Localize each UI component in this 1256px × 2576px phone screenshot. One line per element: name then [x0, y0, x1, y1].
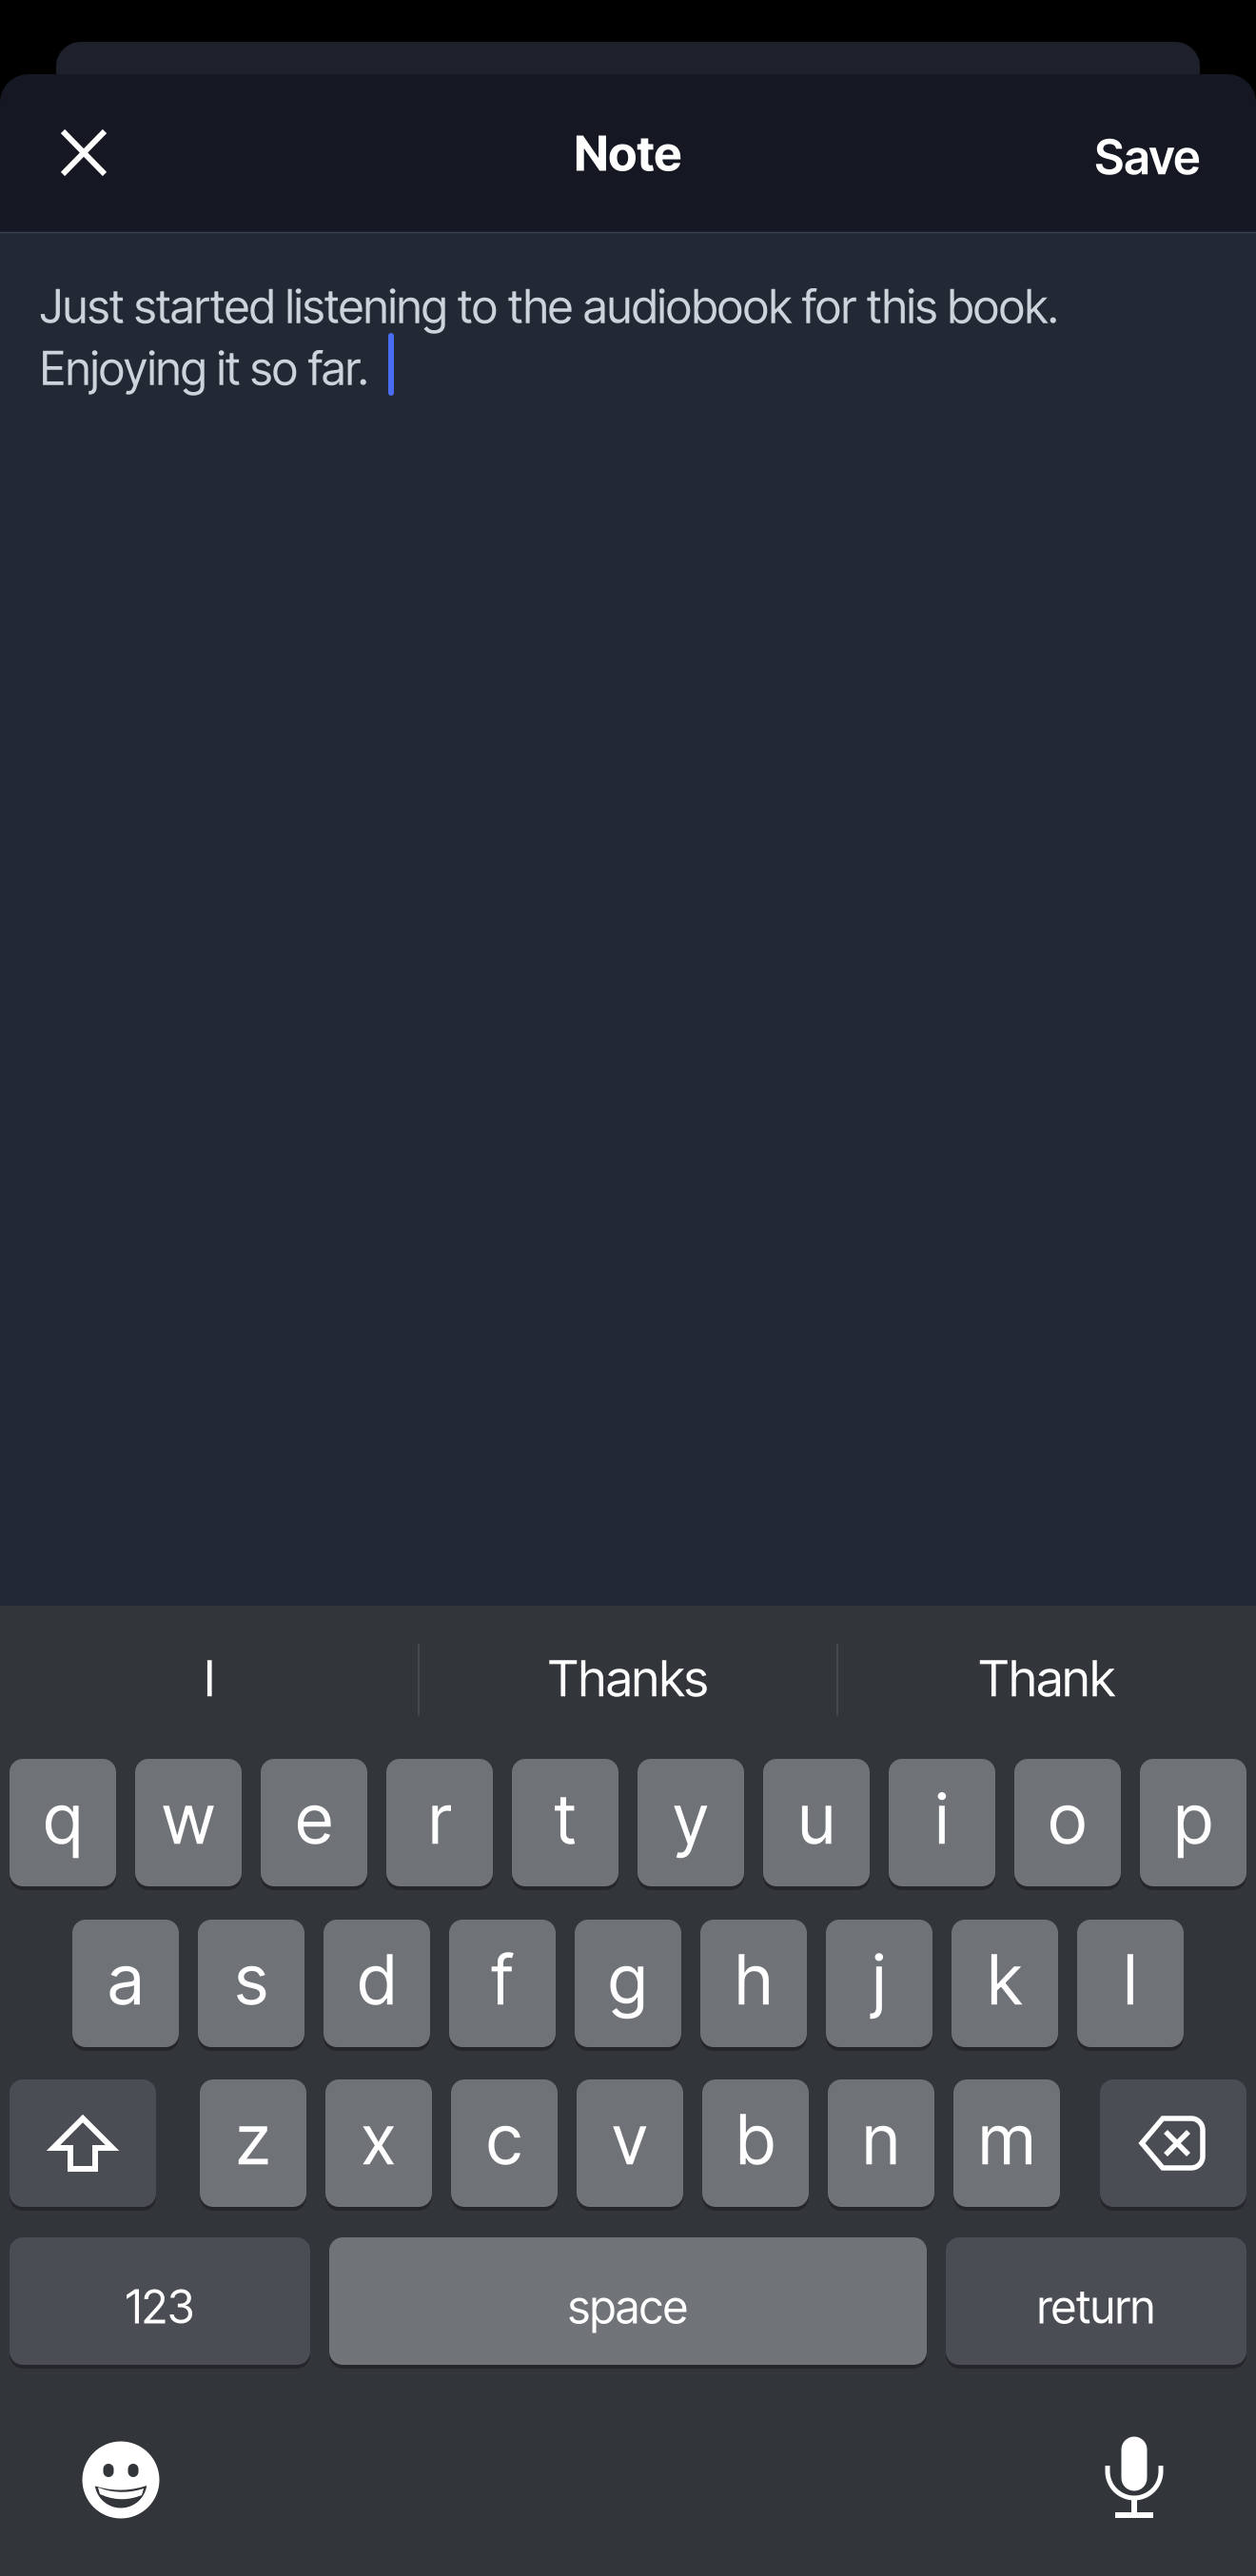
staticText: x	[362, 2098, 396, 2181]
button[interactable]: space	[329, 2237, 927, 2365]
button[interactable]: b	[702, 2079, 809, 2207]
button[interactable]: c	[451, 2079, 558, 2207]
button[interactable]: m	[953, 2079, 1060, 2207]
staticText: Thank	[979, 1647, 1115, 1708]
button[interactable]: f	[449, 1920, 556, 2047]
button[interactable]: n	[828, 2079, 934, 2207]
button[interactable]: e	[261, 1759, 367, 1886]
staticText: v	[612, 2098, 648, 2181]
staticText: return	[1037, 2279, 1155, 2334]
button[interactable]: r	[386, 1759, 493, 1886]
button[interactable]: q	[10, 1759, 116, 1886]
button[interactable]: d	[324, 1920, 430, 2047]
staticText: t	[554, 1777, 576, 1860]
button[interactable]: k	[952, 1920, 1058, 2047]
button[interactable]: s	[198, 1920, 304, 2047]
staticText: e	[296, 1777, 332, 1860]
button[interactable]: i	[889, 1759, 995, 1886]
staticText: q	[44, 1777, 82, 1860]
staticText: I	[204, 1647, 215, 1708]
staticText: r	[429, 1777, 451, 1860]
staticText: h	[735, 1938, 772, 2021]
staticText: Just started listening to the audiobook …	[40, 278, 1059, 334]
button[interactable]: Close	[38, 107, 129, 198]
staticText: p	[1174, 1777, 1212, 1860]
staticText: d	[358, 1938, 396, 2021]
button[interactable]: z	[200, 2079, 306, 2207]
button[interactable]: o	[1014, 1759, 1121, 1886]
button[interactable]: w	[135, 1759, 242, 1886]
staticText: i	[935, 1777, 949, 1860]
staticText: m	[979, 2098, 1035, 2181]
button[interactable]: y	[638, 1759, 744, 1886]
staticText: f	[491, 1938, 513, 2021]
staticText: k	[988, 1938, 1022, 2021]
staticText: Thanks	[548, 1647, 708, 1708]
staticText: g	[608, 1938, 648, 2021]
staticText: Enjoying it so far.	[40, 340, 369, 396]
button[interactable]: t	[512, 1759, 618, 1886]
staticText: l	[1124, 1938, 1137, 2021]
staticText: y	[673, 1777, 708, 1860]
staticText: c	[487, 2098, 522, 2181]
button[interactable]: 123	[10, 2237, 310, 2365]
button[interactable]: x	[325, 2079, 432, 2207]
staticText: j	[873, 1938, 886, 2021]
button[interactable]: Thank	[842, 1621, 1251, 1735]
button[interactable]: h	[700, 1920, 807, 2047]
button[interactable]: Thanks	[423, 1621, 833, 1735]
staticText: space	[568, 2279, 688, 2334]
button[interactable]: Delete	[1100, 2079, 1246, 2207]
button[interactable]: p	[1140, 1759, 1246, 1886]
button[interactable]: l	[1077, 1920, 1184, 2047]
button[interactable]: u	[763, 1759, 870, 1886]
button[interactable]: Shift	[10, 2079, 156, 2207]
button[interactable]: a	[72, 1920, 179, 2047]
staticText: b	[736, 2098, 775, 2181]
button[interactable]: j	[826, 1920, 932, 2047]
button[interactable]: v	[577, 2079, 683, 2207]
staticText: n	[863, 2098, 900, 2181]
staticText: 123	[126, 2279, 194, 2334]
staticText: o	[1049, 1777, 1087, 1860]
staticText: u	[798, 1777, 834, 1860]
staticText: w	[162, 1777, 215, 1860]
staticText: a	[108, 1938, 143, 2021]
staticText: Note	[574, 124, 682, 182]
staticText: s	[235, 1938, 267, 2021]
button[interactable]: g	[575, 1920, 681, 2047]
staticText: z	[236, 2098, 270, 2181]
staticText: Save	[1095, 128, 1200, 186]
button[interactable]: return	[946, 2237, 1246, 2365]
button[interactable]: I	[5, 1621, 414, 1735]
button[interactable]: Emoji	[69, 2428, 173, 2532]
button[interactable]: Dictate	[1082, 2425, 1187, 2529]
button[interactable]: Save	[1085, 115, 1210, 199]
